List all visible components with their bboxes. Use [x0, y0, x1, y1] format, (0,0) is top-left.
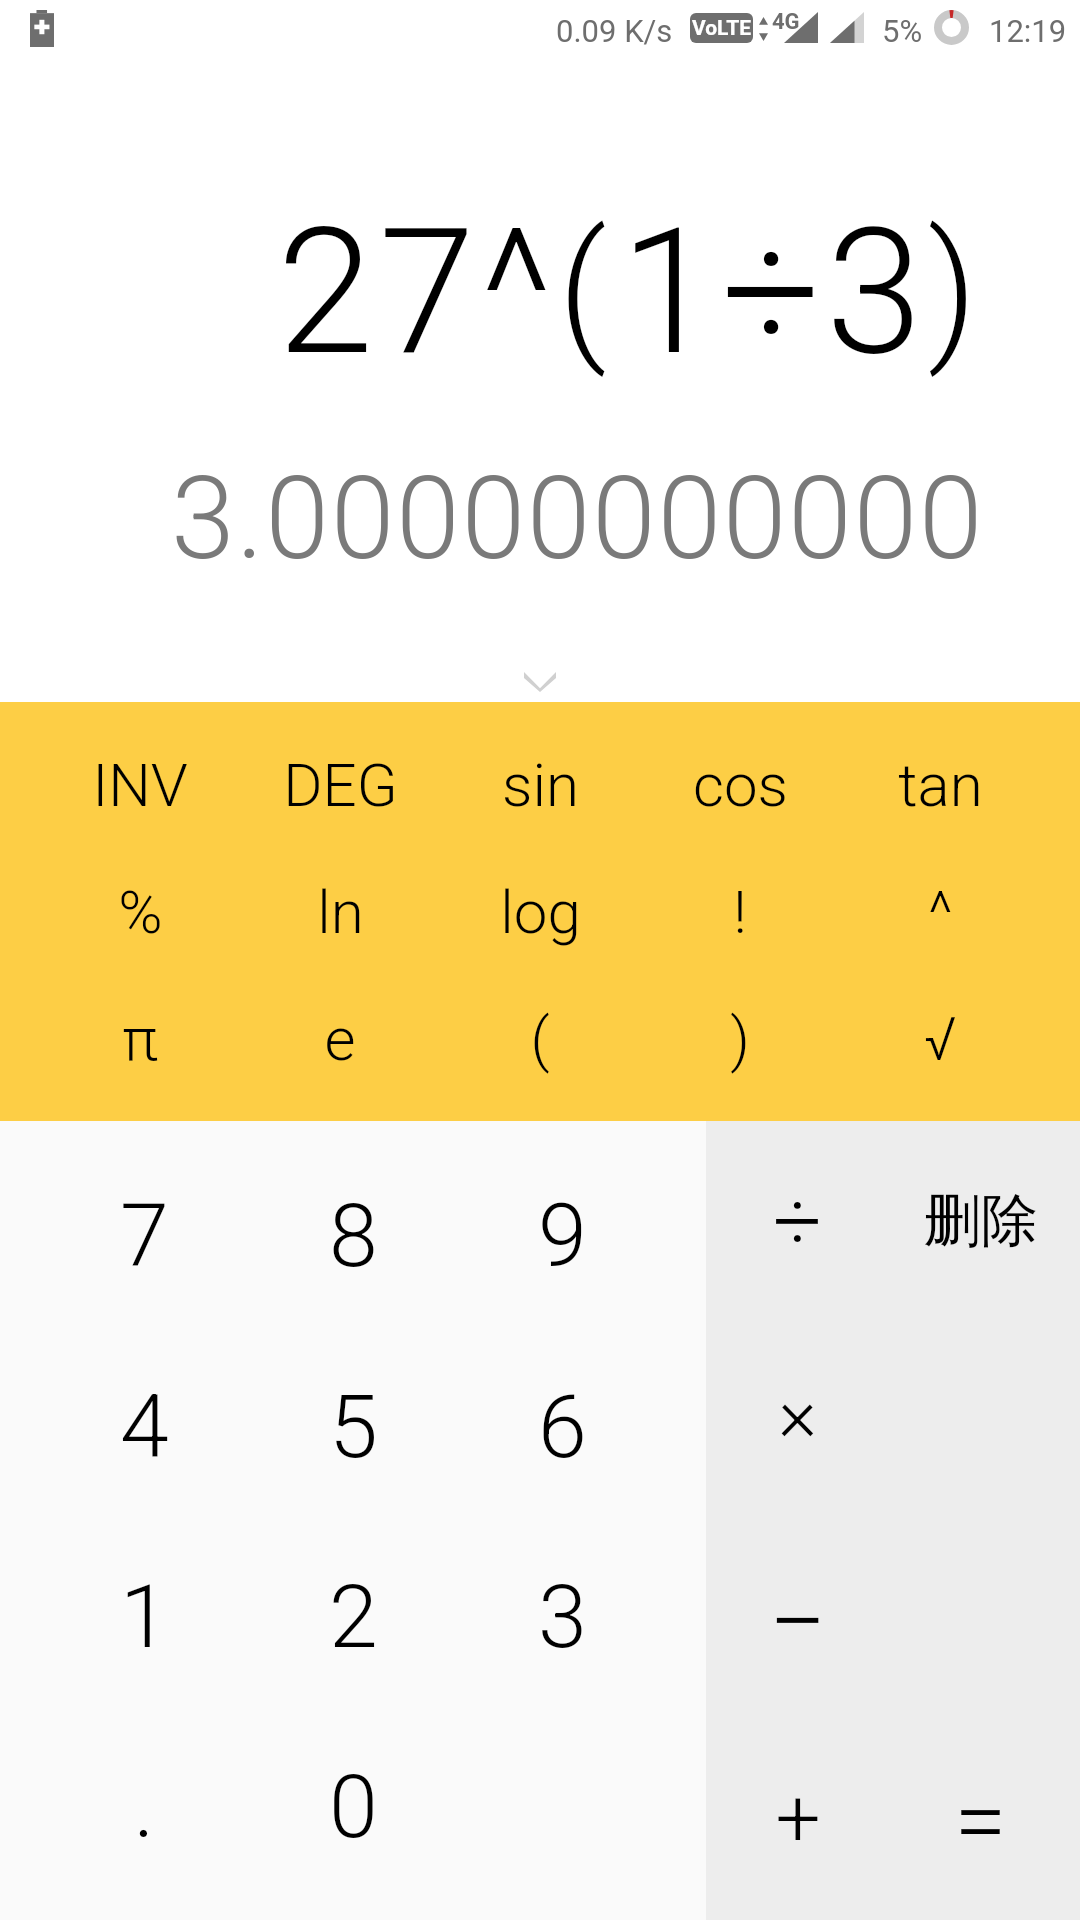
staticText: 3.00000000000 [171, 451, 985, 586]
other: Battery saver [30, 10, 54, 47]
staticText: 3 [538, 1565, 587, 1668]
staticText: ÷ [773, 1171, 822, 1272]
staticText: 2 [329, 1565, 378, 1668]
staticText: 5 [329, 1375, 378, 1478]
staticText: 8 [329, 1184, 378, 1287]
staticText: 4G [772, 9, 800, 35]
button[interactable]: × [706, 1320, 889, 1520]
button[interactable]: √ [840, 975, 1040, 1102]
button[interactable]: ^ [840, 848, 1040, 975]
staticText: cos [693, 750, 788, 820]
button[interactable]: 9 [458, 1140, 667, 1331]
button[interactable]: ln [240, 848, 440, 975]
button[interactable]: 8 [249, 1140, 458, 1331]
button[interactable]: Collapse pad [475, 646, 605, 702]
button[interactable]: ! [640, 848, 840, 975]
staticText: . [133, 1755, 155, 1858]
staticText: 7 [120, 1184, 169, 1287]
button[interactable]: . [39, 1711, 249, 1901]
button[interactable]: 删除 [889, 1121, 1072, 1320]
button[interactable]: 0 [249, 1711, 458, 1901]
staticText: ^ [928, 877, 953, 947]
button[interactable]: 6 [458, 1331, 667, 1521]
staticText: DEG [283, 750, 398, 820]
button[interactable]: ÷ [706, 1121, 889, 1320]
staticText: 4 [120, 1375, 169, 1478]
button[interactable]: INV [40, 721, 240, 848]
staticText: log [500, 877, 581, 947]
button[interactable]: 5 [249, 1331, 458, 1521]
staticText: % [118, 877, 163, 947]
button[interactable]: 7 [39, 1140, 249, 1331]
staticText: 6 [538, 1375, 587, 1478]
button[interactable]: − [706, 1520, 889, 1720]
button[interactable]: 4 [39, 1331, 249, 1521]
staticText: tan [898, 750, 983, 820]
staticText: + [775, 1772, 821, 1866]
staticText: ! [733, 877, 747, 947]
staticText: 12:19 [989, 13, 1067, 49]
staticText: 0.09 K/s [556, 13, 673, 49]
staticText: ( [530, 1004, 550, 1074]
staticText: π [122, 1004, 158, 1074]
button[interactable]: sin [440, 721, 640, 848]
button[interactable]: ( [440, 975, 640, 1102]
staticText: 删除 [924, 1185, 1038, 1257]
staticText: 27^(1÷3) [277, 191, 991, 395]
button[interactable]: DEG [240, 721, 440, 848]
staticText: × [778, 1371, 817, 1458]
staticText: sin [502, 750, 579, 820]
staticText: √ [924, 1004, 957, 1074]
button[interactable]: = [889, 1720, 1072, 1920]
button[interactable]: % [40, 848, 240, 975]
staticText: e [324, 1004, 356, 1074]
staticText: VoLTE [692, 16, 751, 41]
staticText: 1 [120, 1565, 169, 1668]
staticText: − [768, 1562, 827, 1682]
button[interactable]: π [40, 975, 240, 1102]
button[interactable]: 2 [249, 1521, 458, 1711]
staticText: 0 [329, 1755, 378, 1858]
staticText: ) [730, 1004, 750, 1074]
button[interactable]: log [440, 848, 640, 975]
button[interactable]: cos [640, 721, 840, 848]
button[interactable]: ) [640, 975, 840, 1102]
button[interactable]: + [706, 1720, 889, 1920]
staticText: 5% [882, 13, 923, 49]
button[interactable]: 1 [39, 1521, 249, 1711]
button[interactable]: e [240, 975, 440, 1102]
button[interactable]: tan [840, 721, 1040, 848]
staticText: = [954, 1765, 1007, 1876]
staticText: INV [92, 750, 188, 820]
staticText: ln [317, 877, 364, 947]
button[interactable]: 3 [458, 1521, 667, 1711]
staticText: 9 [538, 1184, 587, 1287]
